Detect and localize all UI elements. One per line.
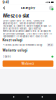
staticText: Koszt uslugi [3, 38, 23, 42]
button[interactable]: Wstecz [2, 5, 7, 11]
staticText: Wybierz [21, 62, 34, 65]
button[interactable]: Wybierz [3, 60, 53, 67]
staticText: Wiesz co slat [3, 13, 30, 18]
staticText: Szczegóły [20, 6, 35, 10]
staticText: 84 zl [48, 44, 53, 46]
staticText: Zdalnie [3, 55, 11, 58]
staticText: Platnosc przed lub po wykonaniu uslugi [3, 43, 43, 46]
staticText: Lorem ipsum dolor sit amet, consectetur … [3, 19, 52, 38]
staticText: 9:41 [2, 0, 8, 4]
button[interactable]: Profil [48, 5, 54, 11]
staticText: Warianty uslugi [3, 49, 28, 52]
